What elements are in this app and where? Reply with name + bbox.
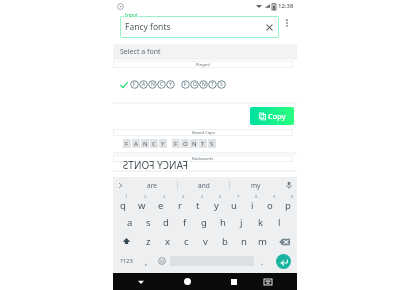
button[interactable]: Enter xyxy=(272,253,295,269)
staticText: my xyxy=(251,181,261,190)
button[interactable]: and xyxy=(178,177,229,193)
button[interactable]: h xyxy=(213,213,232,232)
staticText: A xyxy=(134,140,138,148)
staticText: z xyxy=(146,235,151,248)
button[interactable]: More options xyxy=(279,15,295,31)
staticText: FANCY FONTS xyxy=(122,158,188,172)
button[interactable]: 0 xyxy=(279,193,297,213)
staticText: O xyxy=(193,81,197,88)
staticText: Copy xyxy=(268,111,286,121)
button[interactable]: Clear text xyxy=(264,22,275,33)
staticText: 4 xyxy=(182,194,185,200)
staticText: F xyxy=(125,140,129,148)
button[interactable]: 6 xyxy=(207,193,225,213)
staticText: 2 xyxy=(144,194,147,200)
staticText: 12:38 xyxy=(278,2,294,10)
button[interactable]: Boxed Caps xyxy=(113,129,293,136)
staticText: O xyxy=(183,140,188,148)
button[interactable]: Home xyxy=(174,273,200,290)
button[interactable]: my xyxy=(230,177,281,193)
button[interactable]: ?123 xyxy=(113,251,139,271)
button[interactable]: , xyxy=(139,251,154,271)
button[interactable]: Boxed Caps xyxy=(113,128,297,154)
button[interactable]: are xyxy=(127,177,177,193)
button[interactable]: Backspace xyxy=(272,232,297,251)
button[interactable]: Fancy fonts xyxy=(120,16,279,38)
button[interactable]: Copy xyxy=(250,107,294,125)
staticText: n xyxy=(241,235,247,248)
staticText: C xyxy=(160,81,164,88)
button[interactable]: Backwards xyxy=(113,155,293,162)
button[interactable]: s xyxy=(139,213,157,232)
button[interactable]: 4 xyxy=(170,193,189,213)
button[interactable]: z xyxy=(139,232,158,251)
button[interactable]: a xyxy=(121,213,139,232)
staticText: Ringed xyxy=(196,62,210,68)
button[interactable]: Ringed xyxy=(113,60,297,104)
button[interactable]: j xyxy=(232,213,251,232)
button[interactable]: 9 xyxy=(261,193,279,213)
staticText: C xyxy=(152,140,156,148)
button[interactable]: 5 xyxy=(189,193,207,213)
button[interactable]: f xyxy=(175,213,194,232)
button[interactable]: v xyxy=(196,232,215,251)
button[interactable]: Ringed xyxy=(113,61,293,68)
button[interactable]: k xyxy=(251,213,270,232)
button[interactable]: Shift xyxy=(113,232,139,251)
button[interactable]: Expand suggestions xyxy=(113,177,127,193)
staticText: N xyxy=(143,140,148,148)
staticText: S xyxy=(220,81,223,88)
staticText: Backwards xyxy=(192,156,214,162)
staticText: a xyxy=(127,216,133,229)
staticText: 8 xyxy=(255,194,258,200)
button[interactable]: l xyxy=(270,213,289,232)
staticText: r xyxy=(178,199,182,212)
staticText: , xyxy=(145,256,148,267)
staticText: o xyxy=(267,199,273,212)
button[interactable]: 8 xyxy=(243,193,261,213)
staticText: N xyxy=(151,81,155,88)
button[interactable]: . xyxy=(254,251,270,271)
button[interactable]: Back xyxy=(128,273,153,290)
staticText: u xyxy=(231,199,237,212)
staticText: h xyxy=(220,216,226,229)
button[interactable]: Switch keyboard xyxy=(255,273,281,290)
button[interactable]: m xyxy=(253,232,272,251)
button[interactable]: Recent apps xyxy=(221,273,247,290)
button[interactable]: Backwards xyxy=(113,154,297,172)
button[interactable]: n xyxy=(234,232,253,251)
staticText: Y xyxy=(169,81,172,88)
staticText: A xyxy=(142,81,146,88)
button[interactable]: c xyxy=(177,232,196,251)
staticText: d xyxy=(163,216,169,229)
staticText: Y xyxy=(161,140,165,148)
staticText: p xyxy=(285,199,291,212)
staticText: i xyxy=(251,199,254,212)
staticText: F xyxy=(174,140,178,148)
staticText: N xyxy=(202,81,206,88)
staticText: m xyxy=(258,235,267,248)
button[interactable]: 1 xyxy=(113,193,132,213)
staticText: v xyxy=(203,235,208,248)
button[interactable]: d xyxy=(157,213,175,232)
staticText: S xyxy=(210,140,214,148)
staticText: Fancy fonts xyxy=(125,21,171,33)
staticText: N xyxy=(192,140,197,148)
button[interactable]: Voice input xyxy=(281,177,297,193)
button[interactable]: b xyxy=(215,232,234,251)
staticText: c xyxy=(184,235,189,248)
staticText: t xyxy=(196,199,200,212)
button[interactable]: 7 xyxy=(225,193,243,213)
button[interactable]: 2 xyxy=(132,193,151,213)
staticText: 3 xyxy=(163,194,166,200)
staticText: b xyxy=(222,235,228,248)
button[interactable]: x xyxy=(158,232,177,251)
button[interactable]: Emoji xyxy=(154,251,170,271)
staticText: Input xyxy=(125,12,138,19)
button[interactable]: g xyxy=(194,213,213,232)
staticText: and xyxy=(198,181,210,190)
staticText: 6 xyxy=(219,194,222,200)
staticText: g xyxy=(201,216,207,229)
button[interactable]: 3 xyxy=(151,193,170,213)
